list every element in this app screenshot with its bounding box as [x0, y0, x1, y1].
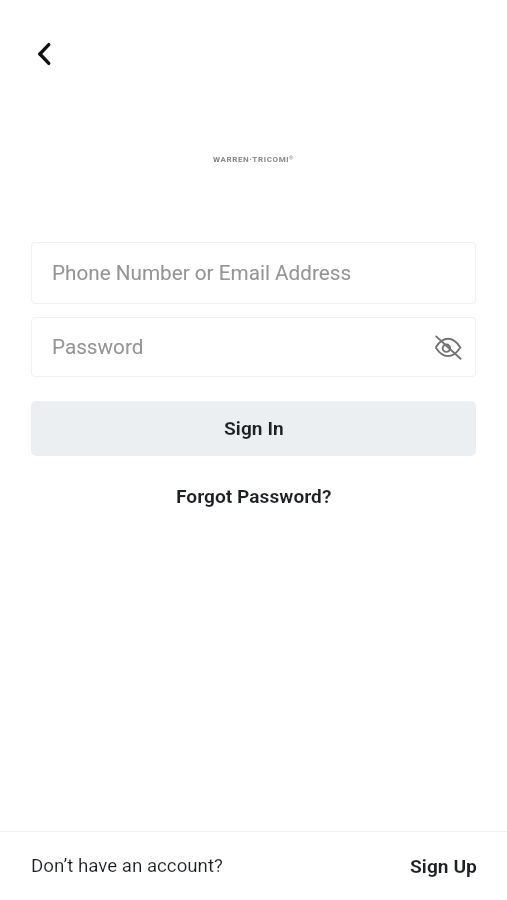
staticText: Phone Number or Email Address [52, 261, 352, 285]
staticText: WARREN·TRICOMI® [213, 155, 294, 164]
button[interactable]: Back [22, 32, 66, 76]
staticText: Password [52, 335, 144, 359]
button[interactable]: Forgot Password? [164, 478, 344, 515]
staticText: Don’t have an account? [31, 855, 223, 877]
button[interactable]: Password [31, 317, 476, 377]
button[interactable]: Show password [427, 329, 463, 365]
button[interactable]: Sign Up [410, 855, 477, 878]
button[interactable]: Phone Number or Email Address [31, 242, 476, 304]
staticText: Sign In [224, 417, 284, 440]
button[interactable]: Sign In [31, 401, 476, 456]
